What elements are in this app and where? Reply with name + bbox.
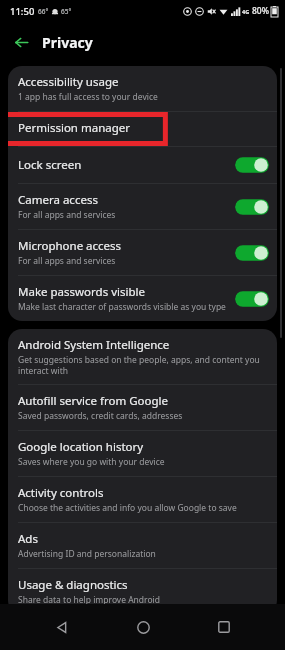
button[interactable]: Make passwords visible (8, 276, 277, 321)
button[interactable]: Home (122, 606, 164, 648)
staticText: Lock screen (18, 157, 82, 173)
staticText: 1 app has full access to your device (18, 91, 158, 103)
staticText: 66° (38, 7, 49, 16)
staticText: Camera access (18, 192, 98, 208)
button[interactable]: Accessibility usage (8, 66, 277, 111)
staticText: Activity controls (18, 485, 104, 501)
button[interactable]: Permission manager (8, 112, 277, 144)
staticText: Share data to help improve Android (18, 594, 160, 606)
staticText: Android System Intelligence (18, 337, 170, 353)
button[interactable]: Back (8, 29, 34, 55)
button[interactable]: Android System Intelligence (8, 329, 277, 384)
button[interactable]: Toggle (235, 243, 269, 263)
staticText: Autofill service from Google (18, 393, 168, 409)
staticText: Google location history (18, 439, 144, 455)
button[interactable]: Recent apps (203, 606, 245, 648)
staticText: Microphone access (18, 238, 122, 254)
staticText: Get suggestions based on the people, app… (18, 354, 269, 376)
staticText: Accessibility usage (18, 74, 119, 90)
button[interactable]: Toggle (235, 155, 269, 175)
button[interactable]: Microphone access (8, 230, 277, 275)
staticText: Privacy (42, 33, 93, 52)
staticText: Make last character of passwords visible… (18, 301, 226, 313)
staticText: Choose the activities and info you allow… (18, 502, 237, 514)
staticText: Saved passwords, credit cards, addresses (18, 410, 183, 422)
button[interactable]: Toggle (235, 197, 269, 217)
staticText: For all apps and services (18, 209, 116, 221)
button[interactable]: Toggle (235, 289, 269, 309)
button[interactable]: Autofill service from Google (8, 385, 277, 430)
button[interactable]: Camera access (8, 184, 277, 229)
button[interactable]: Activity controls (8, 477, 277, 522)
button[interactable]: Back (40, 606, 82, 648)
staticText: 80% (252, 5, 269, 17)
staticText: Permission manager (18, 120, 131, 136)
staticText: For all apps and services (18, 255, 116, 267)
staticText: Usage & diagnostics (18, 577, 128, 593)
button[interactable]: Google location history (8, 431, 277, 476)
staticText: 11:50 (10, 5, 35, 18)
staticText: Ads (18, 531, 38, 547)
button[interactable]: Usage & diagnostics (8, 569, 277, 614)
staticText: 65° (61, 7, 72, 16)
staticText: 4G (242, 8, 250, 15)
button[interactable]: Ads (8, 523, 277, 568)
staticText: Saves where you go with your device (18, 456, 165, 468)
staticText: Advertising ID and personalization (18, 548, 156, 560)
staticText: Make passwords visible (18, 284, 145, 300)
button[interactable]: Lock screen (8, 147, 277, 183)
